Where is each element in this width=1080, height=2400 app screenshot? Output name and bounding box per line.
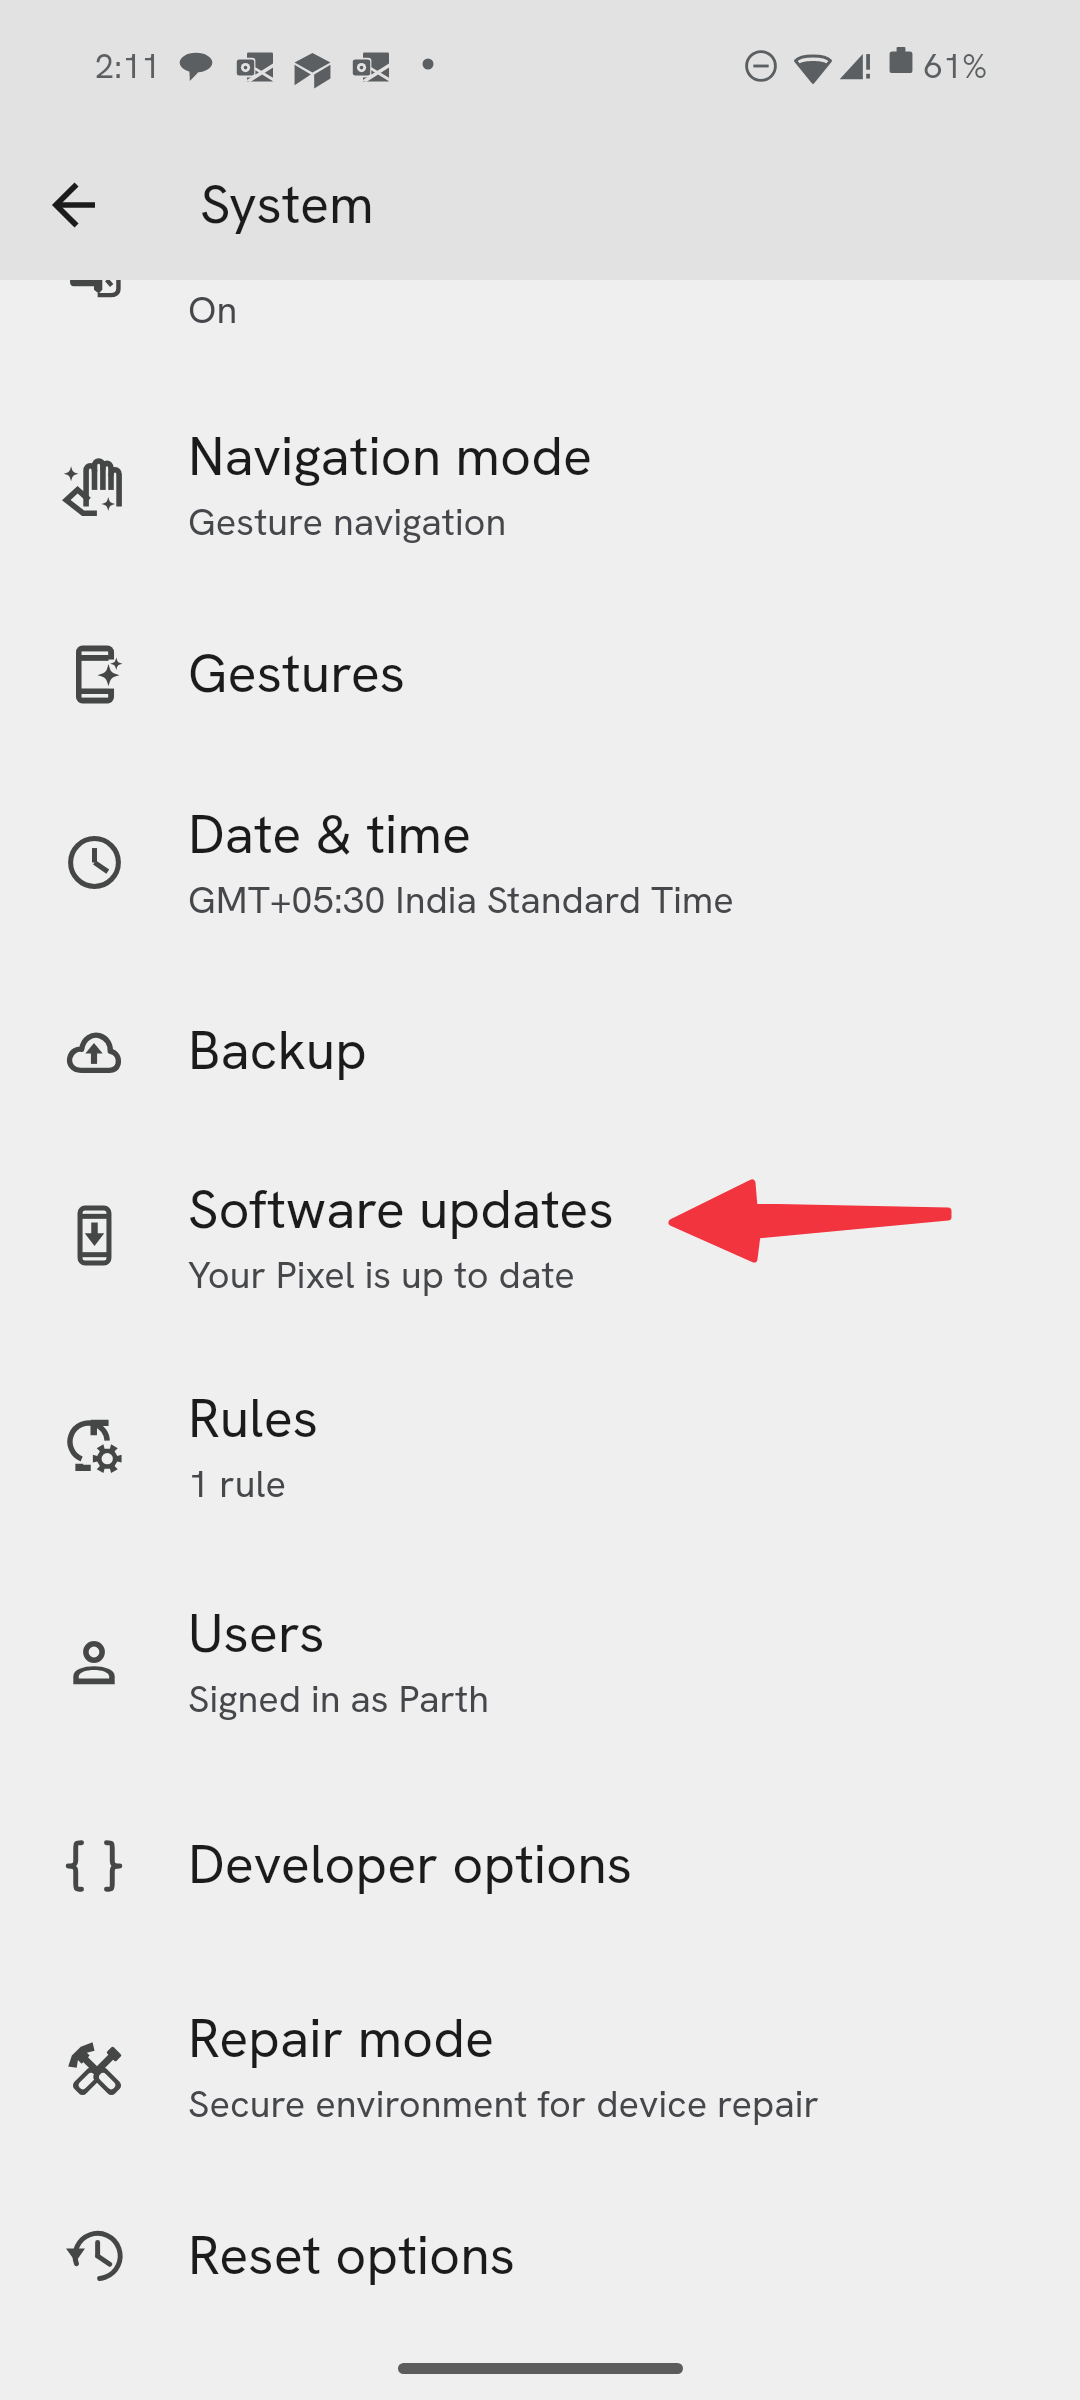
button[interactable] (0, 1128, 1080, 1339)
staticText: Date & time (188, 799, 472, 869)
staticText: Gestures (188, 638, 406, 708)
button[interactable] (0, 2166, 1080, 2331)
button[interactable]: Navigate up (22, 153, 126, 257)
staticText: Gesture navigation (188, 497, 507, 547)
button[interactable] (0, 752, 1080, 963)
button[interactable] (0, 376, 1080, 587)
staticText: Software updates (188, 1174, 614, 1244)
staticText: Developer options (188, 1829, 633, 1899)
button[interactable] (0, 587, 1080, 752)
staticText: GMT+05:30 India Standard Time (188, 875, 734, 925)
staticText: Users (188, 1598, 325, 1668)
button[interactable] (0, 1955, 1080, 2166)
staticText: 1 rule (188, 1459, 287, 1509)
button[interactable] (0, 963, 1080, 1128)
staticText: Repair mode (188, 2003, 495, 2073)
staticText: Navigation mode (188, 421, 593, 491)
button[interactable] (0, 164, 1080, 376)
staticText: Signed in as Parth (188, 1674, 489, 1724)
staticText: System (200, 169, 374, 239)
staticText: 2:11 (95, 44, 161, 88)
button[interactable] (0, 1550, 1080, 1761)
staticText: Reset options (188, 2220, 516, 2290)
button[interactable] (0, 1339, 1080, 1550)
staticText: Secure environment for device repair (188, 2079, 819, 2129)
staticText: Backup (188, 1015, 368, 1085)
staticText: Rules (188, 1383, 319, 1453)
staticText: On (188, 285, 238, 335)
staticText: 61% (924, 44, 988, 88)
staticText: Your Pixel is up to date (188, 1250, 575, 1300)
button[interactable] (0, 1775, 1080, 1940)
